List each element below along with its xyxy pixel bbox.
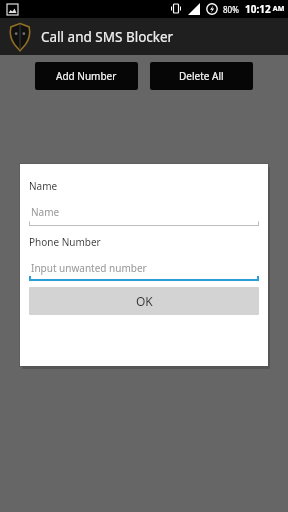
staticText: Call and SMS Blocker — [41, 28, 174, 46]
staticText: Input unwanted number — [31, 261, 147, 275]
staticText: OK — [136, 293, 153, 309]
staticText: 80% — [223, 4, 239, 15]
staticText: Name — [31, 205, 60, 219]
staticText: Add Number — [56, 69, 117, 83]
button[interactable]: OK — [29, 287, 259, 315]
staticText: Phone Number — [29, 235, 101, 249]
button[interactable]: Add Number — [35, 62, 138, 90]
staticText: AM — [271, 4, 285, 14]
button[interactable]: Delete All — [150, 62, 253, 90]
staticText: Name — [29, 179, 58, 193]
staticText: 10:12 — [245, 2, 271, 16]
staticText: Delete All — [179, 69, 224, 83]
